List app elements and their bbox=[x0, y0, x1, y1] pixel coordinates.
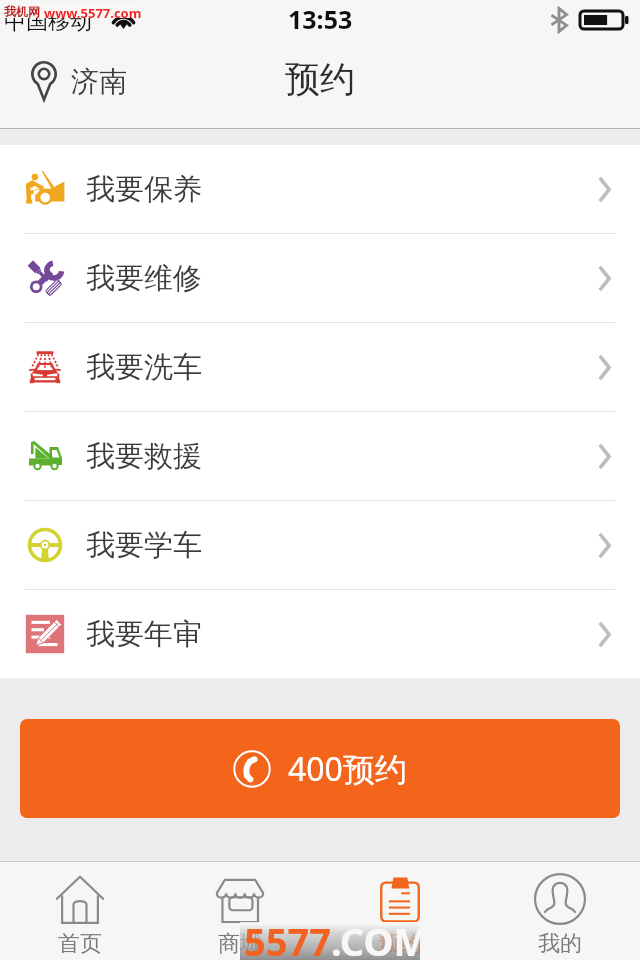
button[interactable]: 商城 bbox=[160, 862, 320, 960]
staticText: 中国移动 bbox=[4, 8, 92, 36]
staticText: 我的 bbox=[538, 930, 582, 958]
button[interactable]: 我要年审 bbox=[0, 590, 640, 678]
staticText: 我要年审 bbox=[86, 616, 202, 653]
button[interactable]: 济南 bbox=[0, 55, 143, 107]
button[interactable]: 我要维修 bbox=[0, 234, 640, 322]
staticText: 首页 bbox=[58, 930, 102, 958]
staticText: 我要维修 bbox=[86, 260, 202, 297]
staticText: 我要洗车 bbox=[86, 349, 202, 386]
staticText: 商城 bbox=[218, 930, 262, 958]
other: Bluetooth bbox=[549, 8, 569, 32]
button[interactable]: 我的 bbox=[480, 862, 640, 960]
staticText: 预约 bbox=[378, 930, 422, 958]
button[interactable]: 我要保养 bbox=[0, 145, 640, 233]
other: Wi-Fi bbox=[112, 9, 135, 29]
staticText: 5577 bbox=[244, 915, 331, 960]
staticText: 我要学车 bbox=[86, 527, 202, 564]
button[interactable]: 我要救援 bbox=[0, 412, 640, 500]
staticText: 13:53 bbox=[288, 2, 353, 36]
other: Battery bbox=[579, 10, 629, 30]
button[interactable]: 我要洗车 bbox=[0, 323, 640, 411]
button[interactable]: 预约 bbox=[320, 862, 480, 960]
staticText: 预约 bbox=[285, 57, 355, 101]
staticText: 济南 bbox=[71, 64, 127, 99]
staticText: 我要救援 bbox=[86, 438, 202, 475]
button[interactable]: 400预约 bbox=[20, 719, 620, 818]
staticText: www.5577.com bbox=[44, 4, 142, 18]
staticText: 400预约 bbox=[288, 747, 407, 791]
staticText: 我要保养 bbox=[86, 171, 202, 208]
staticText: .COM bbox=[331, 915, 430, 960]
button[interactable]: 我要学车 bbox=[0, 501, 640, 589]
staticText: 我机网 bbox=[4, 4, 40, 18]
button[interactable]: 首页 bbox=[0, 862, 160, 960]
